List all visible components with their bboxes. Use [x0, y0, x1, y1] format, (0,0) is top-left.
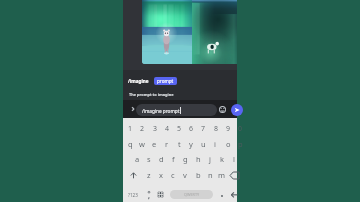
button[interactable]: n	[204, 168, 216, 182]
button[interactable]: Enter	[229, 187, 240, 202]
button[interactable]: 7	[197, 122, 209, 136]
staticText: k	[220, 154, 225, 164]
button[interactable]: o	[222, 137, 234, 151]
staticText: a	[135, 154, 140, 164]
button[interactable]: a	[131, 152, 143, 166]
staticText: t	[178, 139, 181, 149]
staticText: v	[183, 170, 187, 180]
button[interactable]: e	[148, 137, 160, 151]
staticText: x	[159, 170, 163, 180]
button[interactable]: l	[228, 152, 240, 166]
button[interactable]: m	[216, 168, 228, 182]
button[interactable]: k	[216, 152, 228, 166]
button[interactable]: 1	[124, 122, 136, 136]
button[interactable]: 4	[161, 122, 173, 136]
staticText: e	[152, 139, 157, 149]
button[interactable]: j	[204, 152, 216, 166]
staticText: m	[218, 170, 226, 180]
staticText: The prompt to imagine	[129, 92, 174, 97]
staticText: 8	[214, 124, 219, 134]
button[interactable]: Comma	[143, 187, 154, 202]
staticText: c	[171, 170, 175, 180]
button[interactable]: 6	[185, 122, 197, 136]
staticText: 0	[238, 124, 243, 134]
button[interactable]: Change language	[155, 187, 166, 202]
staticText: h	[196, 154, 201, 164]
staticText: QWERTY	[184, 192, 200, 197]
staticText: ?123	[128, 192, 138, 198]
button[interactable]: Shift	[127, 168, 139, 182]
button[interactable]: ?123	[125, 187, 141, 202]
button[interactable]: z	[143, 168, 155, 182]
staticText: 6	[189, 124, 194, 134]
staticText: g	[183, 154, 188, 164]
staticText: 5	[177, 124, 182, 134]
button[interactable]: d	[155, 152, 167, 166]
button[interactable]: Expand actions	[129, 105, 137, 113]
button[interactable]: b	[192, 168, 204, 182]
button[interactable]: /imagine prompt	[136, 104, 217, 116]
staticText: p	[238, 139, 243, 149]
button[interactable]: QWERTY	[170, 190, 213, 199]
staticText: /imagine	[128, 78, 149, 84]
staticText: j	[209, 154, 211, 164]
staticText: i	[214, 139, 216, 149]
staticText: n	[208, 170, 213, 180]
button[interactable]: i	[209, 137, 221, 151]
button[interactable]: Emoji	[218, 105, 226, 113]
staticText: /imagine prompt	[142, 108, 180, 114]
staticText: r	[165, 139, 169, 149]
button[interactable]: q	[124, 137, 136, 151]
button[interactable]: f	[167, 152, 179, 166]
button[interactable]: 2	[136, 122, 148, 136]
button[interactable]: Period	[216, 187, 227, 202]
button[interactable]: w	[136, 137, 148, 151]
staticText: 9	[226, 124, 231, 134]
button[interactable]: h	[192, 152, 204, 166]
staticText: 7	[201, 124, 206, 134]
button[interactable]: u	[197, 137, 209, 151]
staticText: l	[233, 154, 235, 164]
staticText: prompt	[157, 78, 174, 84]
button[interactable]: 3	[149, 122, 161, 136]
staticText: 3	[153, 124, 158, 134]
button[interactable]: 8	[210, 122, 222, 136]
button[interactable]: c	[167, 168, 179, 182]
staticText: 4	[165, 124, 170, 134]
button[interactable]: t	[173, 137, 185, 151]
staticText: w	[139, 139, 145, 149]
button[interactable]: r	[161, 137, 173, 151]
button[interactable]: p	[234, 137, 246, 151]
staticText: s	[147, 154, 151, 164]
staticText: y	[189, 139, 193, 149]
button[interactable]: 5	[173, 122, 185, 136]
staticText: 2	[140, 124, 145, 134]
button[interactable]: x	[155, 168, 167, 182]
staticText: b	[196, 170, 201, 180]
button[interactable]: s	[143, 152, 155, 166]
button[interactable]: y	[185, 137, 197, 151]
button[interactable]: v	[179, 168, 191, 182]
button[interactable]: g	[179, 152, 191, 166]
staticText: 1	[128, 124, 133, 134]
button[interactable]: 9	[222, 122, 234, 136]
button[interactable]: Backspace	[229, 168, 239, 182]
staticText: d	[159, 154, 164, 164]
staticText: u	[201, 139, 206, 149]
staticText: q	[128, 139, 133, 149]
button[interactable]: 0	[234, 122, 246, 136]
staticText: z	[147, 170, 151, 180]
staticText: f	[172, 154, 175, 164]
button[interactable]: Send message	[231, 104, 243, 116]
staticText: o	[226, 139, 231, 149]
